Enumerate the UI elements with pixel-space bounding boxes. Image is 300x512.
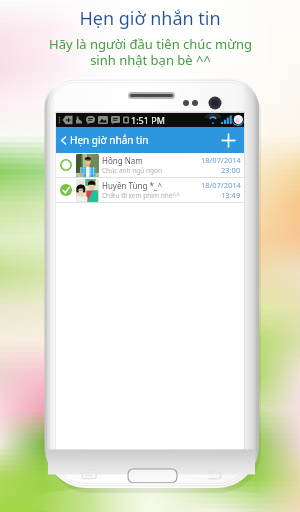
button[interactable]: Hẹn giờ nhắn tin (56, 127, 212, 153)
staticText: Hẹn giờ nhắn tin (70, 133, 149, 147)
staticText: 1:51 PM (131, 114, 165, 126)
staticText: Hồng Nam (102, 155, 143, 166)
button[interactable]: Thêm (212, 127, 244, 153)
staticText: 18/07/2014 (201, 155, 241, 165)
staticText: Chiều đi xem phim nhé^^ (102, 191, 180, 200)
staticText: Chúc anh ngủ ngon (102, 166, 163, 175)
staticText: 18/07/2014 (201, 180, 241, 190)
staticText: 23:00 (221, 165, 241, 175)
staticText: Huyền Tùng *_^ (102, 180, 162, 191)
staticText: Hãy là người đầu tiên chúc mừng sinh nhậ… (49, 35, 252, 68)
button[interactable]: Huyền Tùng *_^ (56, 178, 244, 203)
staticText: Hẹn giờ nhắn tin (79, 6, 221, 31)
staticText: 13:49 (221, 190, 241, 200)
button[interactable]: Hồng Nam (56, 153, 244, 178)
